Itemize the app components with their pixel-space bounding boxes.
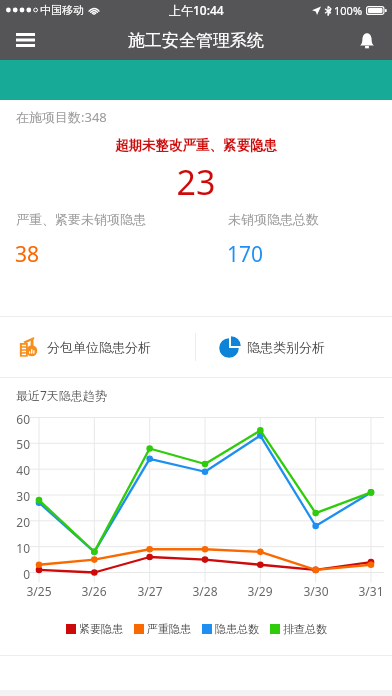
staticText: 分包单位隐患分析 bbox=[47, 339, 151, 355]
button[interactable]: 分包单位隐患分析 bbox=[0, 317, 195, 377]
staticText: 紧要隐患 bbox=[79, 622, 123, 636]
staticText: 3/29 bbox=[239, 583, 281, 599]
staticText: 60 bbox=[0, 411, 30, 427]
staticText: 3/28 bbox=[184, 583, 226, 599]
staticText: 100% bbox=[334, 3, 363, 18]
button[interactable]: 隐患类别分析 bbox=[196, 317, 392, 377]
staticText: 50 bbox=[0, 436, 30, 452]
staticText: 10 bbox=[0, 540, 30, 556]
staticText: 38 bbox=[15, 240, 40, 269]
staticText: 排查总数 bbox=[283, 622, 327, 636]
button[interactable]: Notifications bbox=[350, 23, 384, 57]
button[interactable]: Menu bbox=[8, 23, 42, 57]
staticText: 20 bbox=[0, 514, 30, 530]
staticText: 未销项隐患总数 bbox=[228, 211, 319, 227]
staticText: 上午10:44 bbox=[169, 2, 224, 18]
staticText: 40 bbox=[0, 462, 30, 478]
staticText: 隐患类别分析 bbox=[247, 339, 325, 355]
staticText: 170 bbox=[227, 240, 264, 269]
staticText: 0 bbox=[0, 566, 30, 582]
staticText: 23 bbox=[0, 159, 392, 205]
staticText: 严重、紧要未销项隐患 bbox=[16, 211, 146, 227]
staticText: 3/27 bbox=[129, 583, 171, 599]
staticText: 最近7天隐患趋势 bbox=[16, 387, 107, 403]
staticText: 3/25 bbox=[18, 583, 60, 599]
staticText: 在施项目数:348 bbox=[16, 108, 107, 126]
staticText: 3/30 bbox=[295, 583, 337, 599]
staticText: 施工安全管理系统 bbox=[128, 30, 264, 51]
staticText: 隐患总数 bbox=[215, 622, 259, 636]
staticText: 3/31 bbox=[350, 583, 392, 599]
staticText: 3/26 bbox=[73, 583, 115, 599]
staticText: 超期未整改严重、紧要隐患 bbox=[0, 137, 392, 154]
staticText: 中国移动 bbox=[40, 3, 84, 17]
staticText: 严重隐患 bbox=[147, 622, 191, 636]
staticText: 30 bbox=[0, 488, 30, 504]
